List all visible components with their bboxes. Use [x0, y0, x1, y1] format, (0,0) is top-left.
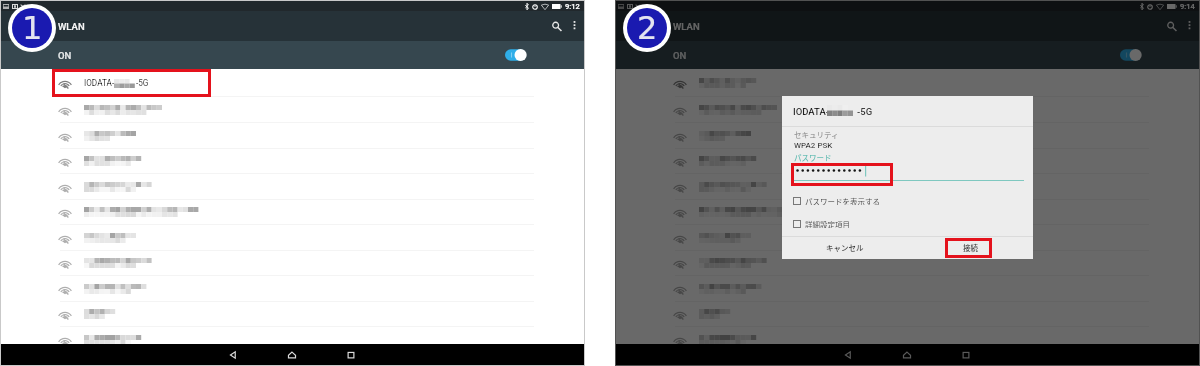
staticText: WLAN — [58, 21, 85, 32]
staticText: 2 — [637, 9, 658, 46]
button[interactable] — [615, 148, 1200, 174]
button[interactable]: 接続 — [930, 237, 1011, 258]
button[interactable]: キャンセル — [795, 237, 895, 258]
button[interactable] — [615, 276, 1200, 302]
button[interactable] — [615, 174, 1200, 200]
button[interactable]: Search — [1163, 18, 1180, 35]
button[interactable]: Home — [284, 347, 300, 363]
staticText: キャンセル — [826, 242, 864, 253]
button[interactable] — [0, 327, 585, 353]
button[interactable] — [0, 301, 585, 327]
button[interactable]: Back — [840, 347, 856, 363]
button[interactable] — [0, 199, 585, 225]
button[interactable] — [0, 250, 585, 276]
staticText: ON — [58, 50, 72, 61]
staticText: 1 — [22, 9, 43, 46]
staticText: 詳細設定項目 — [805, 219, 850, 228]
button[interactable]: More options — [566, 18, 583, 35]
staticText: 接続 — [963, 242, 978, 253]
staticText: セキュリティ — [794, 129, 839, 140]
button[interactable] — [615, 327, 1200, 353]
button[interactable]: 詳細設定項目 — [793, 219, 953, 228]
staticText: 9:14 — [1180, 2, 1195, 11]
button[interactable]: パスワードを表示する — [793, 196, 953, 205]
button[interactable]: IODATA- — [0, 69, 585, 97]
button[interactable] — [615, 123, 1200, 149]
button[interactable]: Search — [548, 18, 565, 35]
staticText: IODATA- — [793, 106, 829, 117]
button[interactable]: Home — [899, 347, 915, 363]
staticText: WLAN — [673, 21, 700, 32]
button[interactable] — [0, 225, 585, 251]
staticText: WPA2 PSK — [794, 141, 833, 150]
staticText: -5G — [136, 78, 149, 88]
button[interactable] — [615, 69, 1200, 97]
button[interactable] — [0, 97, 585, 123]
button[interactable]: Wi-Fi on/off — [505, 47, 526, 63]
button[interactable]: Recent apps — [343, 347, 359, 363]
button[interactable] — [615, 225, 1200, 251]
staticText: -5G — [857, 106, 873, 117]
staticText: パスワード — [794, 152, 832, 163]
button[interactable] — [615, 301, 1200, 327]
button[interactable] — [0, 148, 585, 174]
button[interactable]: Back — [225, 347, 241, 363]
button[interactable] — [0, 174, 585, 200]
button[interactable] — [0, 276, 585, 302]
button[interactable]: Recent apps — [958, 347, 974, 363]
button[interactable] — [615, 199, 1200, 225]
staticText: パスワードを表示する — [805, 196, 880, 205]
button[interactable]: More options — [1181, 18, 1198, 35]
staticText: ON — [673, 50, 687, 61]
button[interactable] — [0, 123, 585, 149]
button[interactable] — [615, 250, 1200, 276]
button[interactable]: Wi-Fi on/off — [1120, 47, 1141, 63]
staticText: IODATA- — [84, 78, 115, 88]
button[interactable] — [615, 97, 1200, 123]
staticText: 9:12 — [565, 2, 580, 11]
